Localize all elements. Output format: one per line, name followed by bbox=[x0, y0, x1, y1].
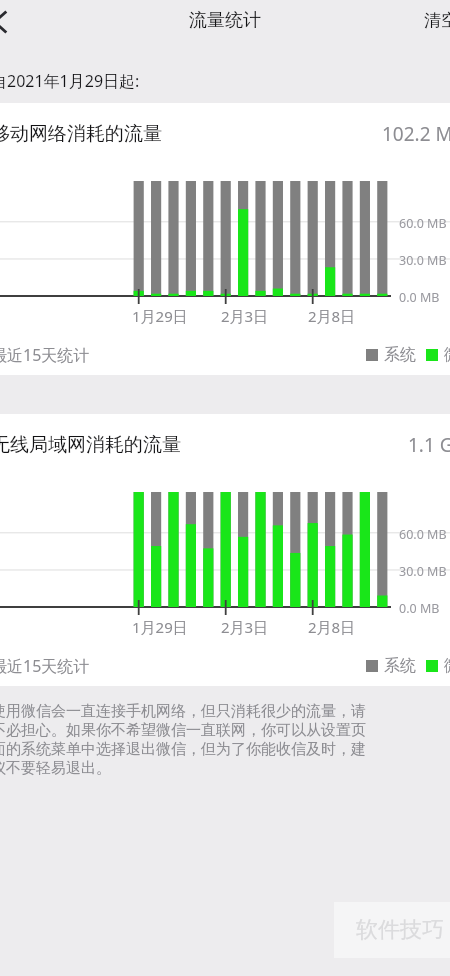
staticText: 软件技巧 bbox=[356, 916, 444, 944]
button[interactable]: Back bbox=[0, 0, 22, 43]
staticText: 2月8日 bbox=[308, 617, 356, 637]
staticText: 60.0 MB bbox=[399, 215, 447, 232]
staticText: 102.2 MB bbox=[382, 121, 450, 147]
staticText: 1月29日 bbox=[132, 306, 188, 326]
staticText: 议不要轻易退出。 bbox=[0, 759, 111, 778]
staticText: 1.1 GB bbox=[408, 432, 450, 458]
staticText: 自2021年1月29日起: bbox=[0, 70, 140, 92]
staticText: 最近15天统计 bbox=[0, 655, 90, 677]
staticText: 1月29日 bbox=[132, 617, 188, 637]
staticText: 无线局域网消耗的流量 bbox=[0, 433, 181, 457]
staticText: 系统 bbox=[384, 345, 416, 365]
staticText: 60.0 MB bbox=[399, 526, 447, 543]
staticText: 30.0 MB bbox=[399, 252, 447, 269]
staticText: 微信 bbox=[444, 656, 450, 676]
staticText: 0.0 MB bbox=[399, 289, 440, 306]
staticText: 2月3日 bbox=[221, 617, 269, 637]
staticText: 面的系统菜单中选择退出微信，但为了你能收信及时，建 bbox=[0, 740, 366, 759]
staticText: 0.0 MB bbox=[399, 600, 440, 617]
staticText: 微信 bbox=[444, 345, 450, 365]
button[interactable]: 清空 bbox=[416, 4, 450, 37]
staticText: 使用微信会一直连接手机网络，但只消耗很少的流量，请 bbox=[0, 702, 366, 721]
staticText: 系统 bbox=[384, 656, 416, 676]
staticText: 30.0 MB bbox=[399, 563, 447, 580]
staticText: 2月8日 bbox=[308, 306, 356, 326]
staticText: 2月3日 bbox=[221, 306, 269, 326]
staticText: 最近15天统计 bbox=[0, 344, 90, 366]
staticText: 流量统计 bbox=[189, 9, 261, 32]
staticText: 清空 bbox=[424, 10, 450, 31]
staticText: 不必担心。如果你不希望微信一直联网，你可以从设置页 bbox=[0, 721, 366, 740]
staticText: 移动网络消耗的流量 bbox=[0, 122, 162, 146]
